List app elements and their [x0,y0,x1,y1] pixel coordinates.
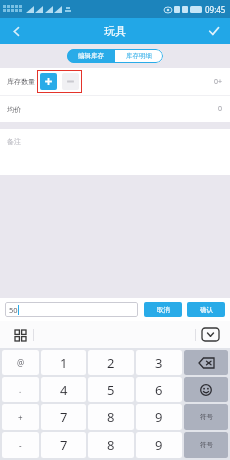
staticText: 符号 [200,441,213,449]
staticText: 9 [155,408,163,426]
staticText: 8 [107,436,115,454]
button[interactable]: Add stock [40,73,57,90]
staticText: 1 [60,354,68,372]
button[interactable]: 编辑库存 [67,49,115,63]
button[interactable]: . [2,377,39,402]
button[interactable]: 8 [88,404,134,430]
staticText: 0 [218,104,223,114]
button[interactable]: @ [2,350,39,375]
staticText: 4 [60,381,68,399]
staticText: 编辑库存 [78,52,104,60]
button[interactable]: Symbols [184,432,228,458]
button[interactable]: 7 [41,404,86,430]
button[interactable]: Remove stock [62,73,79,90]
button[interactable]: 8 [88,432,134,458]
staticText: 库存数量 [7,77,35,86]
button[interactable]: Backspace [184,350,228,375]
staticText: 确认 [200,306,213,314]
button[interactable]: 9 [136,432,182,458]
staticText: 9 [155,436,163,454]
staticText: . [19,384,22,395]
staticText: 均价 [7,105,21,114]
button[interactable]: 4 [41,377,86,402]
staticText: 取消 [157,306,170,314]
button[interactable]: 确认 [187,302,225,317]
staticText: 备注 [7,137,21,146]
button[interactable]: 7 [41,432,86,458]
staticText: 库存明细 [126,52,152,60]
button[interactable]: Input methods [11,326,29,344]
button[interactable]: Back [0,18,32,44]
button[interactable]: Symbols [184,404,228,430]
staticText: 0+ [214,77,223,87]
button[interactable]: - [2,432,39,458]
button[interactable]: 5 [88,377,134,402]
staticText: 7 [60,408,68,426]
button[interactable]: 2 [88,350,134,375]
button[interactable]: Save [198,18,230,44]
button[interactable]: 9 [136,404,182,430]
staticText: 09:45 [205,4,226,15]
button[interactable]: 取消 [144,302,182,317]
button[interactable]: 6 [136,377,182,402]
staticText: 符号 [200,413,213,421]
button[interactable]: 3 [136,350,182,375]
staticText: 8 [107,408,115,426]
button[interactable]: + [2,404,39,430]
staticText: + [18,412,23,423]
staticText: 50 [9,305,18,315]
staticText: 6 [155,381,163,399]
staticText: 7 [60,436,68,454]
staticText: 3 [155,354,163,372]
staticText: 2 [107,354,115,372]
button[interactable]: 库存明细 [115,49,163,63]
staticText: @ [17,357,25,368]
button[interactable]: 1 [41,350,86,375]
button[interactable]: Hide keyboard [202,328,219,341]
staticText: 5 [107,381,115,399]
staticText: - [19,440,22,451]
button[interactable]: 50 [5,302,138,317]
staticText: 玩具 [104,24,126,38]
button[interactable]: Emoji [184,377,228,402]
